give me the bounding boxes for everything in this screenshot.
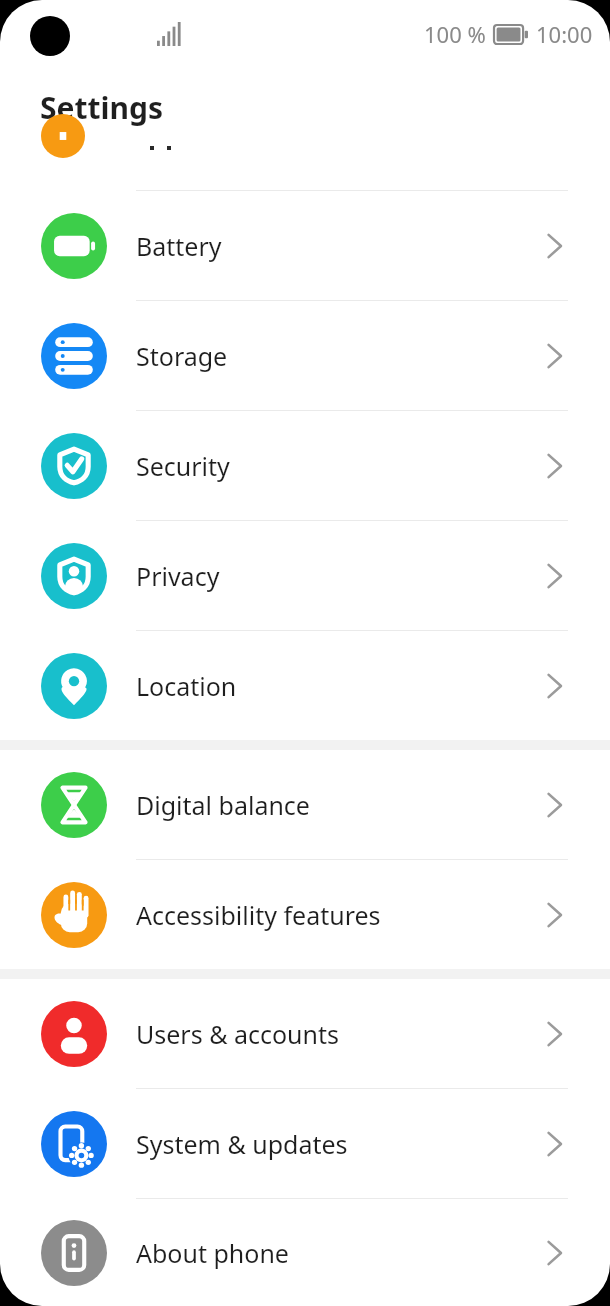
- staticText: Digital balance: [136, 788, 310, 822]
- other: Privacy: [41, 543, 107, 609]
- other: Digital balance: [41, 772, 107, 838]
- staticText: 10:00: [536, 19, 593, 49]
- other: Accessibility features: [41, 882, 107, 948]
- button[interactable]: System & updates: [0, 1089, 610, 1198]
- staticText: Security: [136, 449, 230, 483]
- staticText: Users & accounts: [136, 1017, 340, 1051]
- staticText: Settings: [40, 87, 163, 128]
- other: Storage: [41, 323, 107, 389]
- staticText: Location: [136, 669, 237, 703]
- button[interactable]: [0, 146, 610, 190]
- other: About phone: [41, 1220, 107, 1286]
- button[interactable]: Storage: [0, 301, 610, 410]
- staticText: 100 %: [424, 19, 486, 49]
- button[interactable]: Battery: [0, 191, 610, 300]
- button[interactable]: Users & accounts: [0, 979, 610, 1088]
- other: Location: [41, 653, 107, 719]
- staticText: System & updates: [136, 1127, 348, 1161]
- button[interactable]: Digital balance: [0, 750, 610, 859]
- button[interactable]: About phone: [0, 1199, 610, 1306]
- button[interactable]: Accessibility features: [0, 860, 610, 969]
- staticText: Accessibility features: [136, 898, 381, 932]
- other: Security: [41, 433, 107, 499]
- other: System & updates: [41, 1111, 107, 1177]
- staticText: Battery: [136, 229, 222, 263]
- other: Battery: [41, 213, 107, 279]
- button[interactable]: Privacy: [0, 521, 610, 630]
- staticText: Storage: [136, 339, 228, 373]
- staticText: About phone: [136, 1236, 289, 1270]
- other: Users & accounts: [41, 1001, 107, 1067]
- button[interactable]: Location: [0, 631, 610, 740]
- staticText: Privacy: [136, 559, 220, 593]
- button[interactable]: Security: [0, 411, 610, 520]
